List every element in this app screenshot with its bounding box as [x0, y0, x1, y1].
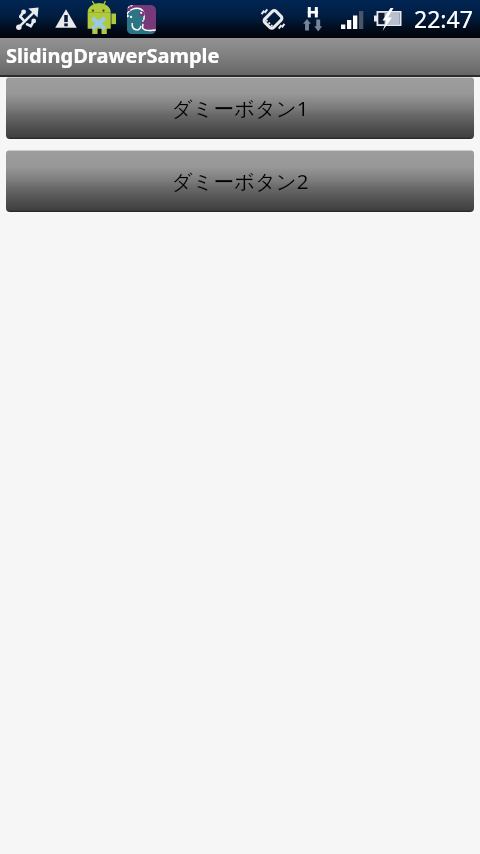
staticText: SlidingDrawerSample	[6, 42, 220, 69]
button[interactable]: ダミーボタン2	[6, 150, 474, 212]
staticText: 22:47	[414, 3, 473, 34]
staticText: ダミーボタン1	[171, 94, 309, 122]
button[interactable]: ダミーボタン1	[6, 77, 474, 139]
other: Status bar: USB connected, warning, USB …	[0, 0, 480, 38]
staticText: ダミーボタン2	[171, 167, 309, 195]
